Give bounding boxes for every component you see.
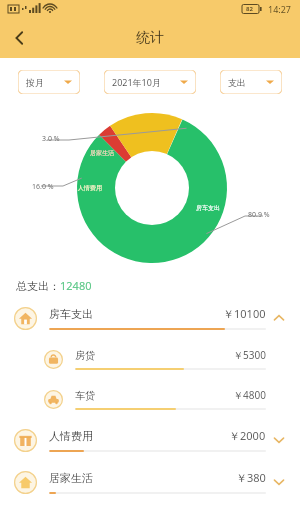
staticText: 支出 <box>228 77 246 88</box>
staticText: 80.9 % <box>248 210 270 220</box>
staticText: 车贷 <box>75 389 95 402</box>
staticText: ￥5300 <box>233 348 266 362</box>
staticText: 居家生活 <box>49 471 93 485</box>
button[interactable]: 按月 <box>18 70 80 94</box>
staticText: 居家生活 <box>90 149 114 157</box>
button[interactable]: 房车支出 <box>0 297 300 339</box>
staticText: ￥4800 <box>233 388 266 402</box>
staticText: ￥380 <box>236 470 266 485</box>
button[interactable]: 人情费用 <box>0 419 300 461</box>
staticText: 房贷 <box>75 349 95 362</box>
staticText: 2021年10月 <box>112 76 161 88</box>
staticText: 总支出： <box>16 279 60 293</box>
staticText: 房车支出 <box>196 204 220 212</box>
staticText: 统计 <box>136 29 164 47</box>
staticText: 12480 <box>60 278 92 293</box>
button[interactable]: 车贷 <box>0 379 300 419</box>
staticText: 16.0 % <box>32 182 54 192</box>
staticText: 人情费用 <box>78 184 102 192</box>
button[interactable]: 房贷 <box>0 339 300 379</box>
staticText: 14:27 <box>268 3 292 15</box>
button[interactable]: 2021年10月 <box>104 70 196 94</box>
button[interactable]: Expand <box>266 427 292 453</box>
staticText: 3.0 % <box>42 134 60 144</box>
staticText: 82 <box>246 5 253 13</box>
button[interactable]: Back <box>0 18 40 58</box>
button[interactable]: Collapse <box>266 305 292 331</box>
staticText: 人情费用 <box>49 429 93 443</box>
button[interactable]: 支出 <box>220 70 282 94</box>
button[interactable]: 居家生活 <box>0 461 300 503</box>
button[interactable]: Expand <box>266 469 292 495</box>
staticText: ￥10100 <box>223 306 266 321</box>
staticText: 按月 <box>26 77 44 88</box>
staticText: 房车支出 <box>49 307 93 321</box>
staticText: ￥2000 <box>229 428 266 443</box>
